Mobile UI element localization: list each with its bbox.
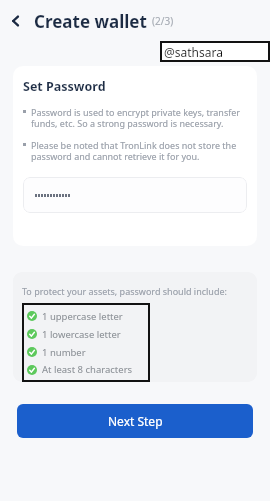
staticText: Create wallet — [34, 10, 147, 33]
button[interactable]: At least 8 characters — [27, 361, 146, 378]
button[interactable] — [23, 177, 247, 213]
staticText: Password is used to encrypt private keys… — [31, 106, 247, 130]
button[interactable]: 1 uppercase letter — [27, 307, 146, 325]
staticText: To protect your assets, password should … — [22, 285, 227, 297]
staticText: Set Password — [23, 78, 106, 95]
staticText: Next Step — [108, 413, 163, 429]
button[interactable]: Back — [3, 8, 29, 34]
button[interactable]: 1 lowercase letter — [27, 325, 146, 343]
staticText: 1 uppercase letter — [42, 310, 123, 323]
staticText: @sathsara — [164, 44, 223, 60]
staticText: At least 8 characters — [42, 363, 133, 376]
staticText: 1 number — [42, 346, 86, 359]
staticText: (2/3) — [152, 14, 174, 28]
button[interactable]: 1 number — [27, 343, 146, 361]
staticText: Please be noted that TronLink does not s… — [31, 139, 247, 163]
button[interactable]: Next Step — [17, 404, 253, 438]
staticText: 1 lowercase letter — [42, 328, 121, 341]
